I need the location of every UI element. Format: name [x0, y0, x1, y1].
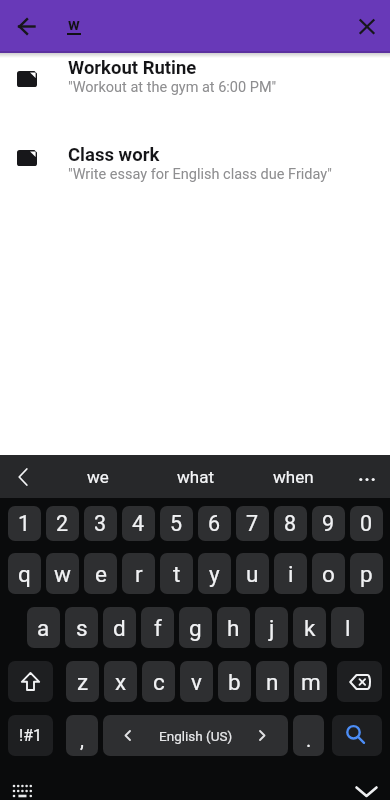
staticText: 7 — [246, 511, 259, 536]
staticText: we — [87, 467, 109, 487]
button[interactable]: j — [255, 607, 288, 648]
staticText: i — [288, 561, 294, 587]
button[interactable]: we — [49, 455, 146, 498]
staticText: l — [345, 615, 351, 641]
staticText: what — [177, 467, 214, 487]
staticText: o — [322, 561, 335, 587]
button[interactable]: f — [141, 607, 174, 648]
staticText: e — [95, 561, 107, 587]
staticText: j — [269, 615, 275, 641]
button[interactable]: p — [350, 553, 383, 594]
button[interactable] — [332, 715, 382, 756]
staticText: w — [54, 561, 71, 587]
staticText: 2 — [56, 511, 69, 536]
staticText: h — [227, 615, 240, 641]
staticText: n — [266, 669, 279, 695]
button[interactable]: English (US) — [103, 715, 288, 756]
button[interactable]: 7 — [236, 506, 269, 541]
button[interactable]: 6 — [198, 506, 231, 541]
staticText: t — [173, 561, 181, 587]
staticText: r — [135, 561, 143, 587]
button[interactable]: 9 — [312, 506, 345, 541]
button[interactable]: what — [147, 455, 244, 498]
button[interactable]: 4 — [122, 506, 155, 541]
staticText: v — [191, 669, 202, 695]
button[interactable]: d — [103, 607, 136, 648]
button[interactable]: x — [104, 661, 137, 702]
button[interactable] — [8, 661, 53, 702]
staticText: p — [360, 561, 373, 587]
button[interactable]: w — [46, 553, 79, 594]
button[interactable]: 3 — [84, 506, 117, 541]
staticText: s — [76, 615, 88, 641]
button[interactable]: o — [312, 553, 345, 594]
button[interactable]: a — [27, 607, 60, 648]
staticText: 9 — [322, 511, 335, 536]
button[interactable]: !#1 — [8, 715, 53, 756]
button[interactable]: n — [256, 661, 289, 702]
staticText: k — [304, 615, 316, 641]
staticText: when — [273, 467, 314, 487]
staticText: Class work — [68, 144, 160, 166]
staticText: d — [113, 615, 126, 641]
button[interactable]: c — [142, 661, 175, 702]
button[interactable]: h — [217, 607, 250, 648]
staticText: , — [80, 728, 84, 751]
button[interactable]: z — [66, 661, 99, 702]
staticText: g — [189, 615, 202, 641]
button[interactable]: m — [294, 661, 327, 702]
staticText: 6 — [208, 511, 221, 536]
staticText: f — [154, 615, 162, 641]
button[interactable]: 2 — [46, 506, 79, 541]
button[interactable] — [337, 661, 382, 702]
button[interactable]: u — [236, 553, 269, 594]
staticText: y — [209, 561, 220, 587]
staticText: 3 — [94, 511, 107, 536]
staticText: "Workout at the gym at 6:00 PM" — [68, 79, 277, 96]
staticText: 4 — [132, 511, 145, 536]
staticText: . — [306, 728, 312, 751]
button[interactable]: k — [293, 607, 326, 648]
button[interactable]: 0 — [350, 506, 383, 541]
button[interactable]: b — [218, 661, 251, 702]
button[interactable]: 1 — [8, 506, 41, 541]
staticText: m — [301, 669, 321, 695]
button[interactable]: t — [160, 553, 193, 594]
button[interactable]: when — [245, 455, 342, 498]
staticText: q — [18, 561, 31, 587]
button[interactable] — [4, 778, 40, 800]
button[interactable]: y — [198, 553, 231, 594]
staticText: !#1 — [19, 726, 42, 745]
staticText: a — [37, 615, 50, 641]
button[interactable]: g — [179, 607, 212, 648]
staticText: English (US) — [159, 728, 233, 744]
button[interactable] — [6, 455, 40, 498]
button[interactable]: , — [66, 715, 98, 756]
button[interactable] — [345, 458, 389, 501]
staticText: c — [153, 669, 165, 695]
button[interactable]: l — [331, 607, 364, 648]
staticText: u — [246, 561, 259, 587]
button[interactable] — [8, 8, 46, 46]
button[interactable]: s — [65, 607, 98, 648]
button[interactable]: i — [274, 553, 307, 594]
staticText: w — [68, 15, 80, 34]
button[interactable]: Workout Rutine — [0, 53, 390, 140]
button[interactable]: q — [8, 553, 41, 594]
staticText: 5 — [170, 511, 183, 536]
staticText: b — [228, 669, 241, 695]
button[interactable] — [346, 779, 386, 800]
staticText: 8 — [284, 511, 297, 536]
button[interactable] — [348, 8, 386, 46]
staticText: 1 — [18, 511, 31, 536]
button[interactable]: v — [180, 661, 213, 702]
button[interactable]: e — [84, 553, 117, 594]
staticText: x — [115, 669, 127, 695]
staticText: z — [77, 669, 89, 695]
button[interactable]: 5 — [160, 506, 193, 541]
button[interactable]: 8 — [274, 506, 307, 541]
button[interactable]: Class work — [0, 140, 390, 227]
button[interactable]: . — [293, 715, 324, 756]
staticText: "Write essay for English class due Frida… — [68, 166, 332, 183]
button[interactable]: r — [122, 553, 155, 594]
